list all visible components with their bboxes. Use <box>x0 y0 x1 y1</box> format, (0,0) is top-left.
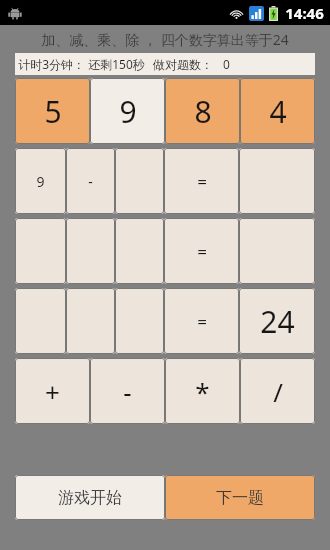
staticText: 游戏开始 <box>58 488 122 508</box>
button[interactable]: = <box>164 288 239 354</box>
staticText: - <box>88 172 93 191</box>
button[interactable] <box>115 288 164 354</box>
button[interactable] <box>239 218 315 284</box>
staticText: 做对题数： <box>153 57 213 72</box>
staticText: 0 <box>223 56 230 72</box>
staticText: * <box>195 374 210 409</box>
button[interactable] <box>15 218 66 284</box>
staticText: 9 <box>36 172 45 191</box>
button[interactable]: 9 <box>15 148 66 214</box>
staticText: = <box>197 170 207 193</box>
button[interactable]: 5 <box>15 78 90 144</box>
staticText: 24 <box>260 301 295 342</box>
staticText: 下一题 <box>216 488 264 508</box>
staticText: 加、减、乘、除 ， 四个数字算出等于24 <box>41 30 289 49</box>
button[interactable]: = <box>164 218 239 284</box>
staticText: = <box>197 310 207 333</box>
button[interactable] <box>239 148 315 214</box>
button[interactable]: 4 <box>240 78 315 144</box>
staticText: / <box>273 374 283 409</box>
staticText: 4 <box>269 91 287 132</box>
button[interactable] <box>15 288 66 354</box>
button[interactable]: 游戏开始 <box>15 475 165 520</box>
button[interactable]: 9 <box>90 78 165 144</box>
staticText: 计时3分钟： 还剩150秒 <box>18 56 145 72</box>
staticText: 8 <box>194 91 212 132</box>
button[interactable]: 下一题 <box>165 475 315 520</box>
button[interactable] <box>66 288 115 354</box>
staticText: 9 <box>119 91 137 132</box>
staticText: = <box>197 240 207 263</box>
button[interactable] <box>115 218 164 284</box>
button[interactable]: 8 <box>165 78 240 144</box>
button[interactable]: / <box>240 358 315 424</box>
button[interactable] <box>66 218 115 284</box>
button[interactable]: 24 <box>239 288 315 354</box>
button[interactable]: * <box>165 358 240 424</box>
button[interactable]: = <box>164 148 239 214</box>
button[interactable]: - <box>90 358 165 424</box>
button[interactable]: + <box>15 358 90 424</box>
staticText: + <box>45 374 60 409</box>
staticText: 14:46 <box>285 3 324 23</box>
button[interactable] <box>115 148 164 214</box>
staticText: - <box>123 374 132 409</box>
staticText: 5 <box>44 91 62 132</box>
button[interactable]: - <box>66 148 115 214</box>
